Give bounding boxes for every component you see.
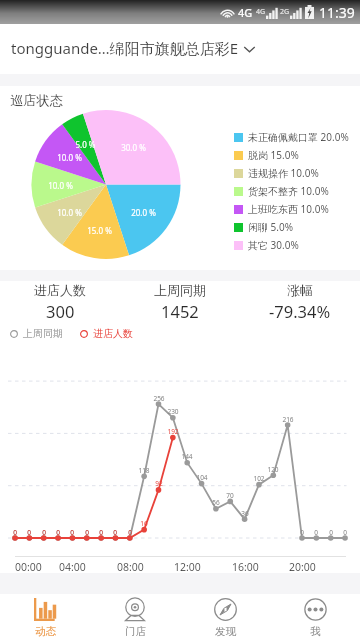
staticText: 36 (241, 509, 249, 518)
staticText: 上班吃东西 10.0% (248, 202, 329, 216)
staticText: 230 (167, 407, 179, 416)
button[interactable]: 上周同期 (120, 282, 240, 319)
staticText: 12:00 (174, 560, 201, 574)
staticText: 15.0 % (87, 225, 112, 236)
staticText: 闲聊 5.0% (248, 220, 294, 234)
staticText: 04:00 (59, 560, 86, 574)
staticText: 4G (238, 5, 253, 20)
staticText: 216 (282, 415, 294, 424)
other: 动态 (34, 598, 56, 621)
staticText: 0 (27, 528, 31, 537)
staticText: 0 (343, 528, 347, 537)
staticText: 违规操作 10.0% (248, 166, 319, 180)
staticText: 0 (70, 528, 74, 537)
staticText: 20.0 % (131, 207, 156, 218)
staticText: 20:00 (289, 560, 316, 574)
staticText: 192 (167, 427, 179, 436)
staticText: 上周同期 (23, 327, 63, 340)
staticText: 1452 (161, 300, 199, 319)
staticText: 未正确佩戴口罩 20.0% (248, 130, 349, 144)
staticText: 巡店状态 (10, 92, 64, 109)
button[interactable]: 未正确佩戴口罩 20.0% (234, 128, 349, 146)
staticText: 30.0 % (121, 142, 146, 153)
staticText: 动态 (35, 625, 56, 638)
staticText: 08:00 (117, 560, 144, 574)
staticText: 92 (155, 479, 163, 488)
other: 我 (304, 598, 327, 621)
staticText: 脱岗 15.0% (248, 148, 299, 162)
staticText: 256 (153, 394, 165, 403)
staticText: 16:00 (232, 560, 259, 574)
staticText: 0 (314, 528, 318, 537)
staticText: 0 (128, 528, 132, 537)
staticText: 120 (267, 465, 279, 474)
staticText: 16 (140, 519, 148, 528)
staticText: 0 (329, 528, 333, 537)
button[interactable]: 其它 30.0% (234, 236, 299, 254)
staticText: 102 (253, 474, 265, 483)
staticText: 0 (42, 528, 46, 537)
staticText: 货架不整齐 10.0% (248, 184, 329, 198)
staticText: 我 (310, 625, 321, 638)
button[interactable]: 进店人数 (80, 327, 133, 340)
button[interactable]: 涨幅 (240, 282, 360, 319)
staticText: 门店 (125, 625, 146, 638)
staticText: 0 (56, 528, 60, 537)
staticText: 0 (13, 528, 17, 537)
staticText: 0 (56, 528, 60, 537)
staticText: 0 (85, 528, 89, 537)
staticText: 0 (27, 528, 31, 537)
button[interactable]: 我 (270, 594, 360, 640)
staticText: 0 (13, 528, 17, 537)
button[interactable]: 脱岗 15.0% (234, 146, 299, 164)
staticText: 4G (256, 7, 266, 17)
staticText: 11:39 (319, 3, 355, 22)
button[interactable]: 上周同期 (10, 327, 63, 340)
staticText: 00:00 (15, 560, 42, 574)
staticText: -79.34% (269, 300, 331, 319)
button[interactable]: 进店人数 (0, 282, 120, 319)
other: 发现 (214, 598, 237, 621)
button[interactable]: 门店 (90, 594, 180, 640)
button[interactable]: 违规操作 10.0% (234, 164, 319, 182)
staticText: 104 (196, 473, 208, 482)
staticText: 0 (99, 528, 103, 537)
button[interactable]: 发现 (180, 594, 270, 640)
button[interactable]: 货架不整齐 10.0% (234, 182, 329, 200)
staticText: 0 (300, 528, 304, 537)
staticText: 0 (70, 528, 74, 537)
staticText: 发现 (215, 625, 236, 638)
staticText: 上周同期 (154, 282, 206, 298)
staticText: 10.0 % (57, 207, 82, 218)
staticText: 5.0 % (75, 139, 96, 150)
staticText: 进店人数 (34, 282, 86, 298)
staticText: 300 (46, 300, 75, 319)
staticText: 进店人数 (93, 327, 133, 340)
staticText: 118 (138, 466, 150, 475)
button[interactable]: 闲聊 5.0% (234, 218, 294, 236)
staticText: 涨幅 (287, 282, 313, 298)
staticText: 10.0 % (57, 152, 82, 163)
staticText: 56 (212, 498, 220, 507)
staticText: 0 (42, 528, 46, 537)
staticText: 2G (280, 7, 290, 17)
staticText: 0 (99, 528, 103, 537)
staticText: 0 (113, 528, 117, 537)
button[interactable]: 动态 (0, 594, 90, 640)
other: 门店 (124, 598, 146, 621)
staticText: 0 (128, 528, 132, 537)
staticText: 其它 30.0% (248, 238, 299, 252)
staticText: 0 (113, 528, 117, 537)
staticText: 0 (85, 528, 89, 537)
staticText: 10.0 % (48, 180, 73, 191)
staticText: 144 (181, 452, 193, 461)
staticText: tongguande…绵阳市旗舰总店彩E (11, 38, 239, 58)
button[interactable]: 上班吃东西 10.0% (234, 200, 329, 218)
staticText: 70 (226, 491, 234, 500)
button[interactable]: tongguande…绵阳市旗舰总店彩E (0, 24, 360, 72)
